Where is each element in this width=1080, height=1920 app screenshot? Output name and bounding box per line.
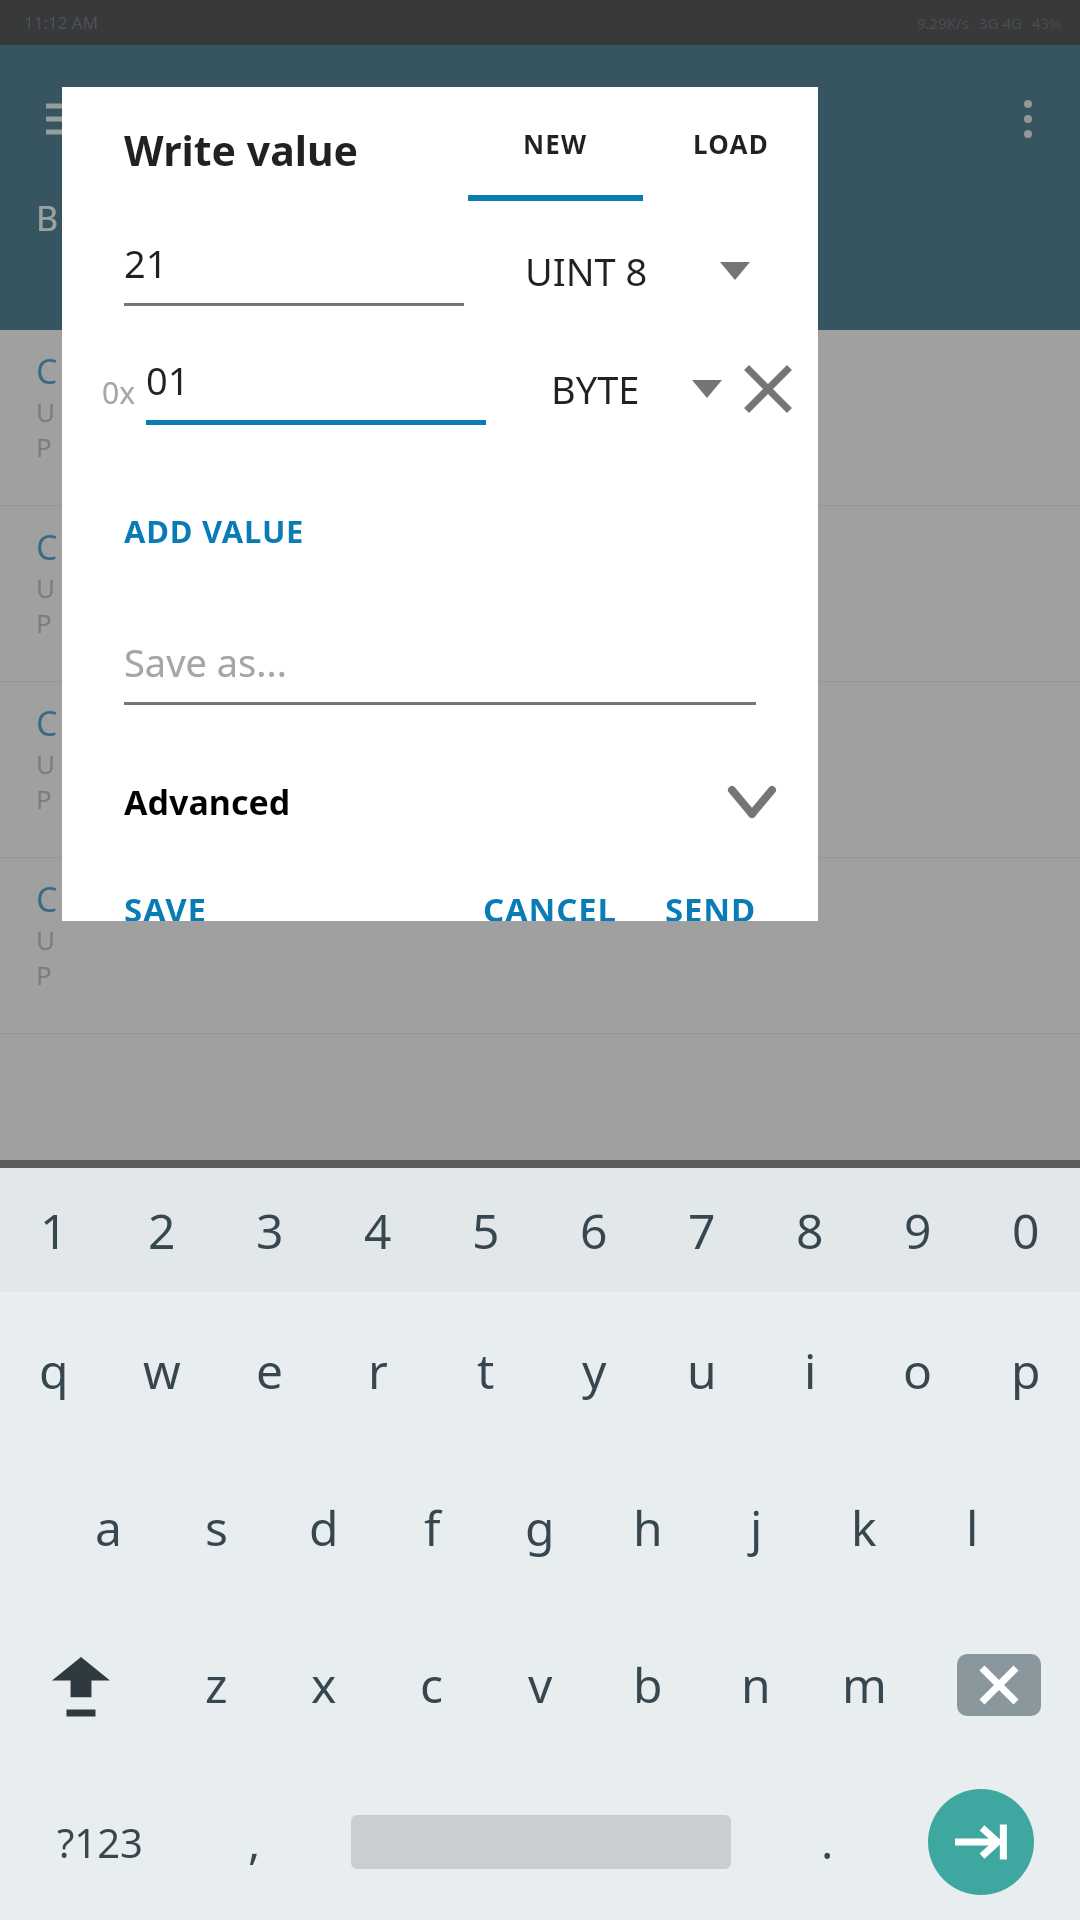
- staticText: ,: [248, 1810, 261, 1873]
- button[interactable]: i: [756, 1292, 864, 1449]
- staticText: q: [39, 1338, 69, 1403]
- button[interactable]: d: [270, 1449, 378, 1606]
- staticText: U: [36, 394, 56, 429]
- button[interactable]: 9: [864, 1168, 972, 1292]
- button[interactable]: u: [648, 1292, 756, 1449]
- staticText: t: [477, 1338, 495, 1403]
- staticText: d: [309, 1495, 339, 1560]
- button[interactable]: 6: [540, 1168, 648, 1292]
- staticText: n: [741, 1652, 771, 1717]
- button[interactable]: 4: [324, 1168, 432, 1292]
- staticText: w: [143, 1338, 181, 1403]
- button[interactable]: 3: [216, 1168, 324, 1292]
- button[interactable]: x: [270, 1606, 378, 1763]
- staticText: z: [205, 1652, 228, 1717]
- button[interactable]: b: [594, 1606, 702, 1763]
- button[interactable]: Next: [882, 1763, 1080, 1920]
- staticText: 5: [472, 1198, 500, 1263]
- button[interactable]: 21: [124, 237, 464, 306]
- button[interactable]: Remove value: [740, 361, 796, 417]
- button[interactable]: 7: [648, 1168, 756, 1292]
- button[interactable]: w: [108, 1292, 216, 1449]
- staticText: i: [804, 1338, 817, 1403]
- button[interactable]: l: [918, 1449, 1026, 1606]
- button[interactable]: CANCEL: [483, 887, 617, 921]
- staticText: 6: [580, 1198, 608, 1263]
- staticText: m: [842, 1652, 887, 1717]
- staticText: 7: [688, 1198, 716, 1263]
- button[interactable]: ADD VALUE: [124, 510, 305, 552]
- button[interactable]: t: [432, 1292, 540, 1449]
- staticText: 0x: [102, 372, 136, 413]
- staticText: j: [750, 1495, 763, 1560]
- button[interactable]: j: [702, 1449, 810, 1606]
- button[interactable]: k: [810, 1449, 918, 1606]
- staticText: LOAD: [693, 126, 769, 161]
- button[interactable]: 8: [756, 1168, 864, 1292]
- staticText: 11:12 AM: [24, 11, 99, 34]
- button[interactable]: a: [54, 1449, 162, 1606]
- staticText: x: [311, 1652, 337, 1717]
- staticText: k: [851, 1495, 877, 1560]
- staticText: b: [633, 1652, 663, 1717]
- button[interactable]: y: [540, 1292, 648, 1449]
- button[interactable]: Select value type: [525, 245, 796, 297]
- button[interactable]: 2: [108, 1168, 216, 1292]
- staticText: P: [36, 429, 52, 464]
- button[interactable]: SAVE: [124, 887, 207, 921]
- button[interactable]: ,: [199, 1763, 309, 1920]
- staticText: P: [36, 605, 52, 640]
- button[interactable]: h: [594, 1449, 702, 1606]
- staticText: f: [424, 1495, 441, 1560]
- staticText: p: [1011, 1338, 1041, 1403]
- staticText: NEW: [523, 126, 588, 161]
- button[interactable]: z: [162, 1606, 270, 1763]
- staticText: y: [582, 1338, 607, 1403]
- button[interactable]: Backspace: [918, 1606, 1080, 1763]
- staticText: h: [633, 1495, 663, 1560]
- button[interactable]: 5: [432, 1168, 540, 1292]
- staticText: SAVE: [124, 887, 207, 921]
- button[interactable]: NEW: [468, 87, 643, 212]
- staticText: P: [36, 957, 52, 992]
- staticText: 2: [148, 1198, 176, 1263]
- staticText: P: [36, 781, 52, 816]
- button[interactable]: Advanced: [124, 779, 772, 825]
- staticText: 43%: [1032, 13, 1062, 33]
- button[interactable]: m: [810, 1606, 918, 1763]
- button[interactable]: c: [378, 1606, 486, 1763]
- button[interactable]: e: [216, 1292, 324, 1449]
- button[interactable]: .: [772, 1763, 882, 1920]
- staticText: s: [205, 1495, 228, 1560]
- button[interactable]: 1: [0, 1168, 108, 1292]
- button[interactable]: o: [864, 1292, 972, 1449]
- staticText: .: [821, 1810, 834, 1873]
- button[interactable]: 0: [972, 1168, 1080, 1292]
- staticText: SEND: [665, 887, 756, 921]
- button[interactable]: v: [486, 1606, 594, 1763]
- staticText: C: [36, 348, 58, 394]
- staticText: 8: [796, 1198, 824, 1263]
- staticText: UINT 8: [525, 245, 648, 297]
- staticText: Advanced: [124, 779, 291, 825]
- staticText: ?123: [57, 1815, 143, 1869]
- staticText: 3: [256, 1198, 284, 1263]
- button[interactable]: f: [378, 1449, 486, 1606]
- button[interactable]: Space: [309, 1763, 772, 1920]
- staticText: 01: [146, 354, 190, 406]
- button[interactable]: r: [324, 1292, 432, 1449]
- button[interactable]: q: [0, 1292, 108, 1449]
- staticText: CANCEL: [483, 887, 617, 921]
- button[interactable]: p: [972, 1292, 1080, 1449]
- button[interactable]: ?123: [0, 1763, 199, 1920]
- staticText: C: [36, 876, 58, 922]
- staticText: a: [95, 1495, 122, 1560]
- button[interactable]: LOAD: [643, 87, 818, 212]
- button[interactable]: s: [162, 1449, 270, 1606]
- button[interactable]: Select byte type: [551, 363, 722, 415]
- button[interactable]: g: [486, 1449, 594, 1606]
- button[interactable]: Shift: [0, 1606, 162, 1763]
- button[interactable]: n: [702, 1606, 810, 1763]
- button[interactable]: 01: [146, 354, 486, 425]
- button[interactable]: SEND: [665, 887, 756, 921]
